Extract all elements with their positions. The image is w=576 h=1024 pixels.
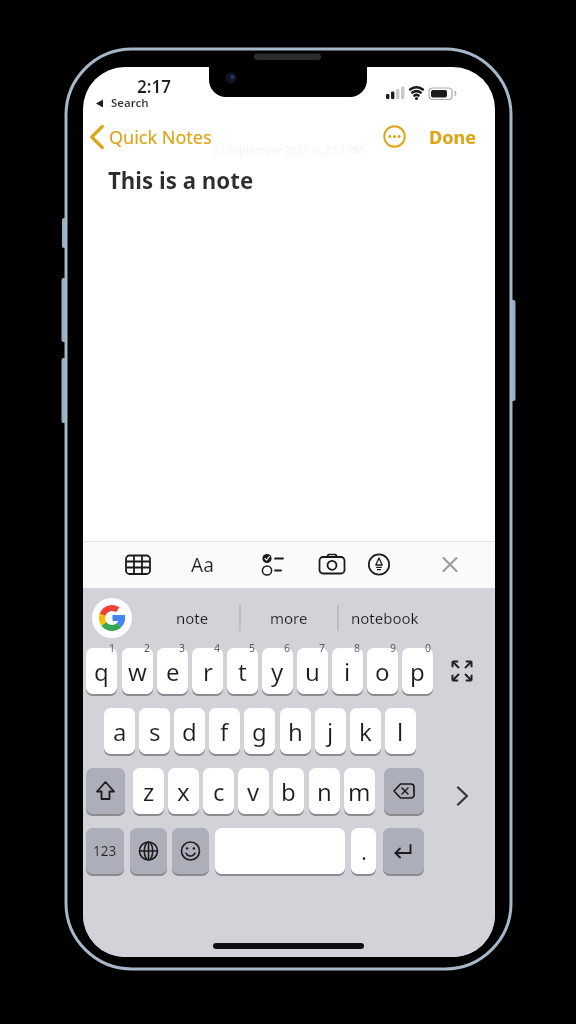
staticText: t [238,655,247,688]
button[interactable]: v [238,768,269,814]
button[interactable] [158,603,226,633]
staticText: z [143,775,155,808]
button[interactable] [172,828,209,874]
staticText: Search [111,95,149,111]
staticText: p [410,655,425,688]
button[interactable] [255,603,323,633]
staticText: c [213,775,225,808]
button[interactable]: j [315,708,346,754]
button[interactable]: n [309,768,340,814]
button[interactable] [432,547,468,583]
button[interactable] [383,828,424,874]
staticText: note [176,608,209,628]
staticText: 123 [93,842,117,860]
button[interactable] [345,603,425,633]
button[interactable]: g [244,708,275,754]
staticText: m [348,775,371,808]
staticText: notebook [351,608,419,628]
staticText: k [359,715,372,748]
button[interactable] [86,768,125,814]
button[interactable]: Done [423,122,481,152]
button[interactable]: s [139,708,170,754]
button[interactable] [83,122,223,152]
button[interactable]: q [86,648,117,694]
button[interactable]: h [280,708,311,754]
button[interactable]: c [203,768,234,814]
button[interactable]: f [209,708,240,754]
staticText: Done [429,125,476,150]
button[interactable]: r [192,648,223,694]
staticText: a [113,715,127,748]
button[interactable]: m [344,768,375,814]
button[interactable]: t [227,648,258,694]
staticText: 5 [249,641,256,655]
staticText: 0 [425,641,432,655]
staticText: 7 [319,641,326,655]
staticText: g [252,715,267,748]
staticText: y [271,655,284,688]
staticText: 3 [179,641,186,655]
staticText: f [220,715,229,748]
button[interactable] [361,547,397,583]
staticText: This is a note [108,165,254,195]
button[interactable]: . [351,828,376,874]
staticText: r [203,655,213,688]
staticText: 4 [214,641,221,655]
button[interactable] [215,828,345,874]
staticText: more [270,608,308,628]
button[interactable]: y [262,648,293,694]
staticText: j [327,715,334,748]
staticText: Aa [191,552,214,578]
button[interactable] [120,547,156,583]
button[interactable]: b [273,768,304,814]
button[interactable]: o [367,648,398,694]
staticText: v [247,775,260,808]
staticText: u [305,655,320,688]
button[interactable]: z [133,768,164,814]
button[interactable] [314,547,350,583]
staticText: 8 [354,641,361,655]
button[interactable]: 123 [86,828,124,874]
staticText: 9 [390,641,397,655]
button[interactable]: d [174,708,205,754]
staticText: i [344,655,351,688]
staticText: n [317,775,332,808]
button[interactable]: l [385,708,416,754]
staticText: 2 [144,641,151,655]
button[interactable]: k [350,708,381,754]
button[interactable] [446,656,478,688]
staticText: Quick Notes [109,125,212,150]
staticText: o [375,655,390,688]
button[interactable]: p [402,648,433,694]
button[interactable]: a [104,708,135,754]
staticText: e [166,655,180,688]
button[interactable]: i [332,648,363,694]
staticText: x [177,775,190,808]
staticText: l [397,715,404,748]
staticText: w [128,655,147,688]
staticText: q [94,655,109,688]
button[interactable]: e [157,648,188,694]
button[interactable]: w [122,648,153,694]
staticText: s [149,715,161,748]
staticText: h [288,715,303,748]
staticText: b [281,775,296,808]
staticText: . [361,836,367,866]
staticText: 2:17 [137,75,171,98]
button[interactable] [380,122,410,152]
staticText: 6 [284,641,291,655]
staticText: 1 [109,641,116,655]
button[interactable] [255,547,291,583]
button[interactable]: u [297,648,328,694]
button[interactable] [130,828,167,874]
button[interactable]: x [168,768,199,814]
button[interactable] [184,547,220,583]
button[interactable] [446,780,478,812]
staticText: 21 September 2021 at 2:17 PM [213,143,364,157]
button[interactable] [384,768,424,814]
staticText: d [182,715,197,748]
button[interactable] [92,598,132,638]
